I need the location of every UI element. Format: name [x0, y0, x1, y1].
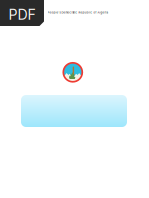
staticText: People's Democratic Republic of Algeria: [47, 11, 107, 14]
staticText: PDF: [8, 6, 35, 23]
